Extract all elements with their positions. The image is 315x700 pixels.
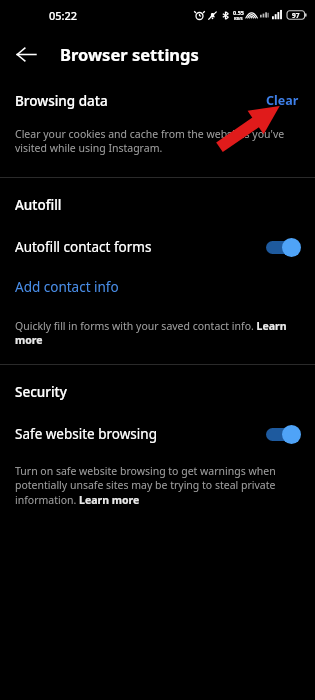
- staticText: Clear your cookies and cache from the we…: [15, 127, 303, 155]
- staticText: 0.55: [233, 9, 244, 16]
- staticText: KB/S: [234, 16, 243, 21]
- staticText: Browsing data: [15, 92, 108, 110]
- button[interactable]: Safe website browsing: [0, 423, 315, 445]
- button[interactable]: Toggle on: [265, 423, 302, 445]
- button[interactable]: Add contact info: [0, 276, 134, 298]
- staticText: Add contact info: [15, 278, 119, 296]
- button[interactable]: Autofill contact forms: [0, 236, 315, 258]
- button[interactable]: Clear: [264, 90, 301, 111]
- staticText: Autofill contact forms: [15, 238, 152, 256]
- staticText: Browser settings: [60, 43, 199, 65]
- staticText: Safe website browsing: [15, 425, 157, 443]
- staticText: Clear: [266, 92, 299, 109]
- staticText: Security: [15, 383, 67, 401]
- staticText: 05:22: [49, 8, 78, 23]
- staticText: Autofill: [15, 196, 62, 214]
- button[interactable]: Back: [4, 32, 48, 76]
- staticText: Quickly fill in forms with your saved co…: [15, 319, 305, 347]
- staticText: Turn on safe website browsing to get war…: [15, 464, 301, 507]
- button[interactable]: Toggle on: [265, 236, 302, 258]
- staticText: 97: [292, 11, 300, 20]
